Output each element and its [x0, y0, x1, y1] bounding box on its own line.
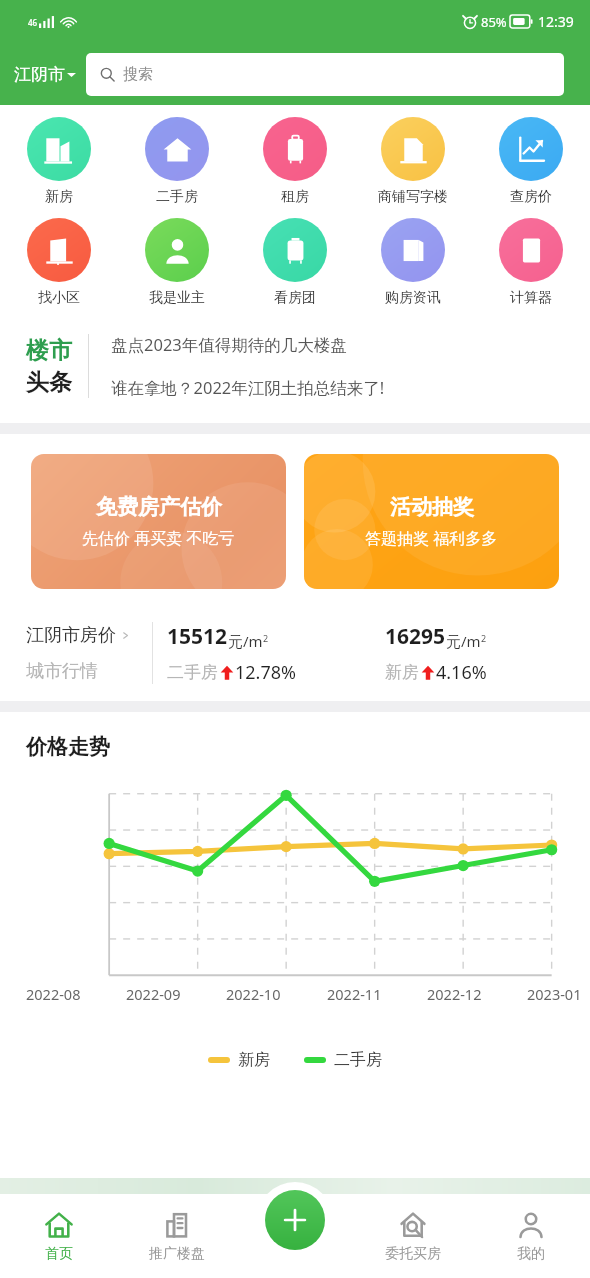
staticText: 15512 [167, 622, 228, 651]
staticText: 租房 [281, 188, 309, 206]
button[interactable]: 新房 [204, 1046, 274, 1074]
button[interactable]: 搜索 [86, 53, 564, 96]
staticText: 首页 [45, 1245, 73, 1263]
staticText: 活动抽奖 [390, 494, 474, 520]
staticText: 先估价 再买卖 不吃亏 [82, 527, 235, 549]
button[interactable]: 找小区 [0, 218, 118, 307]
button[interactable]: 我是业主 [118, 218, 236, 307]
staticText: 二手房 [167, 662, 218, 683]
button[interactable]: 我的 [472, 1210, 590, 1263]
staticText: 看房团 [274, 289, 316, 307]
button[interactable]: 楼市 [0, 321, 590, 411]
button[interactable]: Add [265, 1190, 325, 1250]
staticText: 2023-01 [527, 984, 582, 1004]
staticText: 头条 [26, 368, 72, 397]
staticText: 2 [263, 632, 269, 644]
staticText: 二手房 [334, 1050, 382, 1070]
button[interactable]: 新房 [0, 117, 118, 206]
staticText: 新房 [238, 1050, 270, 1070]
staticText: 江阴市 [14, 64, 65, 85]
staticText: 元/m [228, 631, 263, 651]
staticText: 搜索 [123, 65, 153, 84]
staticText: 2022-12 [427, 984, 482, 1004]
staticText: 购房资讯 [385, 289, 441, 307]
button[interactable]: 商铺写字楼 [354, 117, 472, 206]
staticText: 46 [28, 17, 38, 28]
button[interactable]: 活动抽奖 [304, 454, 559, 589]
staticText: 2022-08 [26, 984, 81, 1004]
button[interactable]: 二手房 [300, 1046, 386, 1074]
staticText: 推广楼盘 [149, 1245, 205, 1263]
staticText: 新房 [45, 188, 73, 206]
staticText: 盘点2023年值得期待的几大楼盘 [111, 333, 347, 356]
staticText: 2 [481, 632, 487, 644]
staticText: 2022-11 [327, 984, 382, 1004]
staticText: 答题抽奖 福利多多 [365, 527, 498, 549]
staticText: 12:39 [538, 12, 574, 31]
staticText: 2022-10 [226, 984, 281, 1004]
staticText: 江阴市房价 [26, 624, 116, 647]
staticText: 新房 [385, 662, 419, 683]
staticText: 城市行情 [26, 660, 98, 683]
button[interactable]: 江阴市房价 [0, 605, 590, 701]
staticText: 我的 [517, 1245, 545, 1263]
button[interactable]: 查房价 [472, 117, 590, 206]
button[interactable]: 计算器 [472, 218, 590, 307]
staticText: 2022-09 [126, 984, 181, 1004]
staticText: 委托买房 [385, 1245, 441, 1263]
button[interactable]: 委托买房 [354, 1210, 472, 1263]
staticText: 楼市 [26, 336, 72, 365]
staticText: 二手房 [156, 188, 198, 206]
staticText: 谁在拿地？2022年江阴土拍总结来了! [111, 376, 385, 399]
button[interactable]: 二手房 [118, 117, 236, 206]
staticText: 元/m [446, 631, 481, 651]
button[interactable]: 江阴市 [0, 58, 82, 91]
staticText: 12.78% [235, 660, 296, 685]
button[interactable]: 首页 [0, 1210, 118, 1263]
staticText: 85% [481, 13, 507, 31]
staticText: 价格走势 [26, 734, 110, 760]
staticText: 查房价 [510, 188, 552, 206]
button[interactable]: 推广楼盘 [118, 1210, 236, 1263]
button[interactable]: 购房资讯 [354, 218, 472, 307]
staticText: 计算器 [510, 289, 552, 307]
button[interactable]: 免费房产估价 [31, 454, 286, 589]
staticText: 我是业主 [149, 289, 205, 307]
staticText: 16295 [385, 622, 446, 651]
staticText: 找小区 [38, 289, 80, 307]
staticText: 免费房产估价 [96, 494, 222, 520]
button[interactable]: 租房 [236, 117, 354, 206]
staticText: 4.16% [436, 660, 487, 685]
staticText: 商铺写字楼 [378, 188, 448, 206]
button[interactable]: 看房团 [236, 218, 354, 307]
